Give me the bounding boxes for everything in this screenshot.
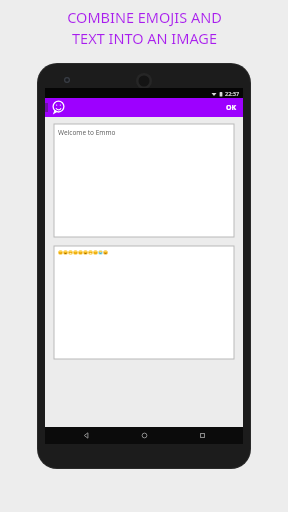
staticText: OK [226,103,237,113]
button[interactable]: OK [220,98,243,117]
button[interactable]: Home [134,427,154,444]
staticText: COMBINE EMOJIS AND [67,7,222,27]
button[interactable] [54,246,234,359]
button[interactable]: Back [76,427,96,444]
button[interactable]: Recent apps [192,427,212,444]
staticText: 22:37 [225,90,240,97]
staticText: Welcome to Emmo [58,128,116,137]
button[interactable]: Emoji keyboard [51,100,66,115]
button[interactable]: Welcome to Emmo [54,124,234,237]
staticText: TEXT INTO AN IMAGE [72,28,217,48]
